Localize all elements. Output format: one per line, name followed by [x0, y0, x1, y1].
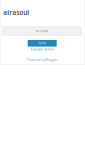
button[interactable]: Blogger	[45, 58, 57, 62]
staticText: View web version	[30, 48, 54, 51]
staticText: Home	[38, 41, 46, 45]
staticText: Blogger	[45, 58, 57, 62]
staticText: airasoul	[3, 8, 29, 17]
button[interactable]: View web version	[0, 47, 85, 51]
staticText: Powered by	[27, 58, 45, 62]
staticText: No posts.	[35, 29, 48, 33]
button[interactable]: Home	[28, 40, 57, 47]
